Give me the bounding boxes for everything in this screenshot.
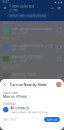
staticText: Learn more (3, 118, 16, 121)
button[interactable]: Meeting_notes (0, 81, 64, 92)
staticText: Turn on Nearby Share (9, 82, 46, 87)
staticText: ▪ ◮ ▮ (54, 0, 61, 3)
staticText: Nearby contacts can share with you (10, 110, 46, 113)
staticText: Share with nearby device (9, 14, 46, 18)
button[interactable]: Quarterly_report (0, 70, 64, 81)
staticText: jpg · 1.2 MB (11, 59, 27, 63)
button[interactable]: Share with nearby device (7, 13, 49, 18)
button[interactable]: Turn on (44, 117, 60, 122)
button[interactable]: com.android.chrome_v1_8 (0, 41, 64, 53)
staticText: pdf · 320 KB (11, 76, 27, 80)
button[interactable]: Account (56, 82, 61, 87)
staticText: Waterfall_20210621 (11, 55, 42, 59)
button[interactable]: Delete (55, 4, 62, 12)
staticText: apk · 112 MB (11, 48, 26, 51)
button[interactable]: Share (48, 4, 55, 12)
staticText: Quarterly_report (11, 72, 35, 76)
staticText: Turn on (46, 117, 57, 121)
button[interactable]: Learn more (3, 118, 16, 121)
staticText: All contacts (10, 106, 29, 110)
staticText: ▤ (57, 6, 60, 10)
staticText: Yesterday (2, 21, 15, 25)
button[interactable]: Waterfall_20210621 (0, 53, 64, 64)
button[interactable]: Close (1, 81, 8, 88)
staticText: Marcus iPhone (3, 94, 27, 99)
staticText: 25.3 MB (9, 8, 18, 12)
staticText: 1 item selected (9, 4, 34, 8)
staticText: 9:41 (2, 0, 9, 4)
staticText: com.android.chrome_v1_8 (11, 43, 52, 48)
button[interactable]: All contacts (0, 106, 64, 114)
button[interactable]: com.google.android.apps (0, 25, 64, 35)
staticText: ✕ (3, 6, 6, 10)
button[interactable]: Cancel selection (1, 4, 9, 12)
staticText: Device name (3, 91, 17, 94)
staticText: Meeting_notes (11, 83, 34, 87)
staticText: Visible to (3, 102, 16, 106)
staticText: com.google.android.apps (11, 27, 52, 31)
staticText: apk · 25.3 MB (11, 31, 27, 34)
staticText: ✕ (3, 83, 6, 86)
staticText: ◅ (50, 6, 53, 10)
